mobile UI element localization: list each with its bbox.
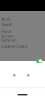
staticText: Control Centre [1, 44, 27, 49]
staticText: Wi-Fi [1, 17, 10, 22]
staticText: Sound [1, 22, 11, 27]
staticText: Screen [1, 33, 13, 39]
staticText: General [1, 37, 15, 42]
staticText: Focus [1, 29, 11, 34]
